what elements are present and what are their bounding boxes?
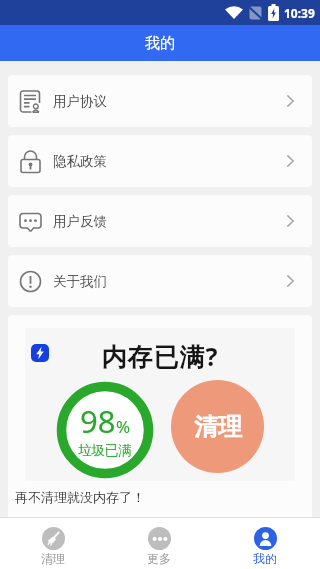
staticText: 用户协议 bbox=[53, 93, 107, 110]
staticText: 垃圾已满 bbox=[78, 442, 132, 459]
button[interactable]: 关于我们 bbox=[8, 255, 312, 307]
staticText: 清理 bbox=[41, 551, 65, 566]
button[interactable]: 用户反馈 bbox=[8, 195, 312, 247]
button[interactable]: 隐私政策 bbox=[8, 135, 312, 187]
staticText: 更多 bbox=[147, 551, 171, 566]
staticText: 清理 bbox=[194, 412, 242, 442]
staticText: 10:39 bbox=[284, 5, 315, 21]
staticText: 98 bbox=[80, 400, 116, 442]
button[interactable]: 我的 bbox=[212, 518, 318, 569]
staticText: % bbox=[116, 415, 131, 438]
staticText: 再不清理就没内存了！ bbox=[15, 489, 145, 505]
staticText: 我的 bbox=[253, 551, 277, 566]
staticText: 关于我们 bbox=[53, 273, 107, 290]
button[interactable]: 用户协议 bbox=[8, 75, 312, 127]
button[interactable]: 清理 bbox=[0, 518, 106, 569]
button[interactable]: 更多 bbox=[106, 518, 212, 569]
staticText: 用户反馈 bbox=[53, 213, 107, 230]
staticText: 内存已满? bbox=[25, 339, 295, 373]
staticText: 我的 bbox=[145, 34, 175, 53]
button[interactable]: 内存已满? bbox=[8, 315, 312, 517]
staticText: 隐私政策 bbox=[53, 153, 107, 170]
